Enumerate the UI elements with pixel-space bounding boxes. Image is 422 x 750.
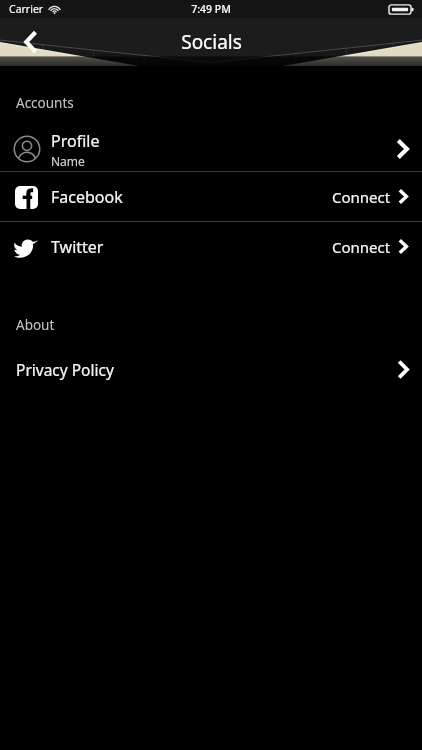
- staticText: Profile: [51, 130, 100, 152]
- staticText: Carrier: [9, 2, 44, 16]
- staticText: Connect: [332, 187, 391, 207]
- button[interactable]: Facebook: [0, 172, 422, 221]
- staticText: Facebook: [51, 186, 332, 208]
- button[interactable]: Back: [10, 21, 52, 63]
- staticText: Twitter: [51, 236, 332, 258]
- button[interactable]: Privacy Policy: [0, 352, 422, 386]
- staticText: Privacy Policy: [16, 359, 397, 380]
- staticText: Connect: [332, 237, 391, 257]
- staticText: 7:49 PM: [191, 2, 231, 16]
- button[interactable]: Twitter: [0, 222, 422, 271]
- button[interactable]: Profile: [0, 127, 422, 171]
- staticText: About: [16, 316, 55, 334]
- staticText: Name: [51, 153, 85, 169]
- staticText: Accounts: [16, 94, 74, 112]
- staticText: Socials: [181, 29, 242, 55]
